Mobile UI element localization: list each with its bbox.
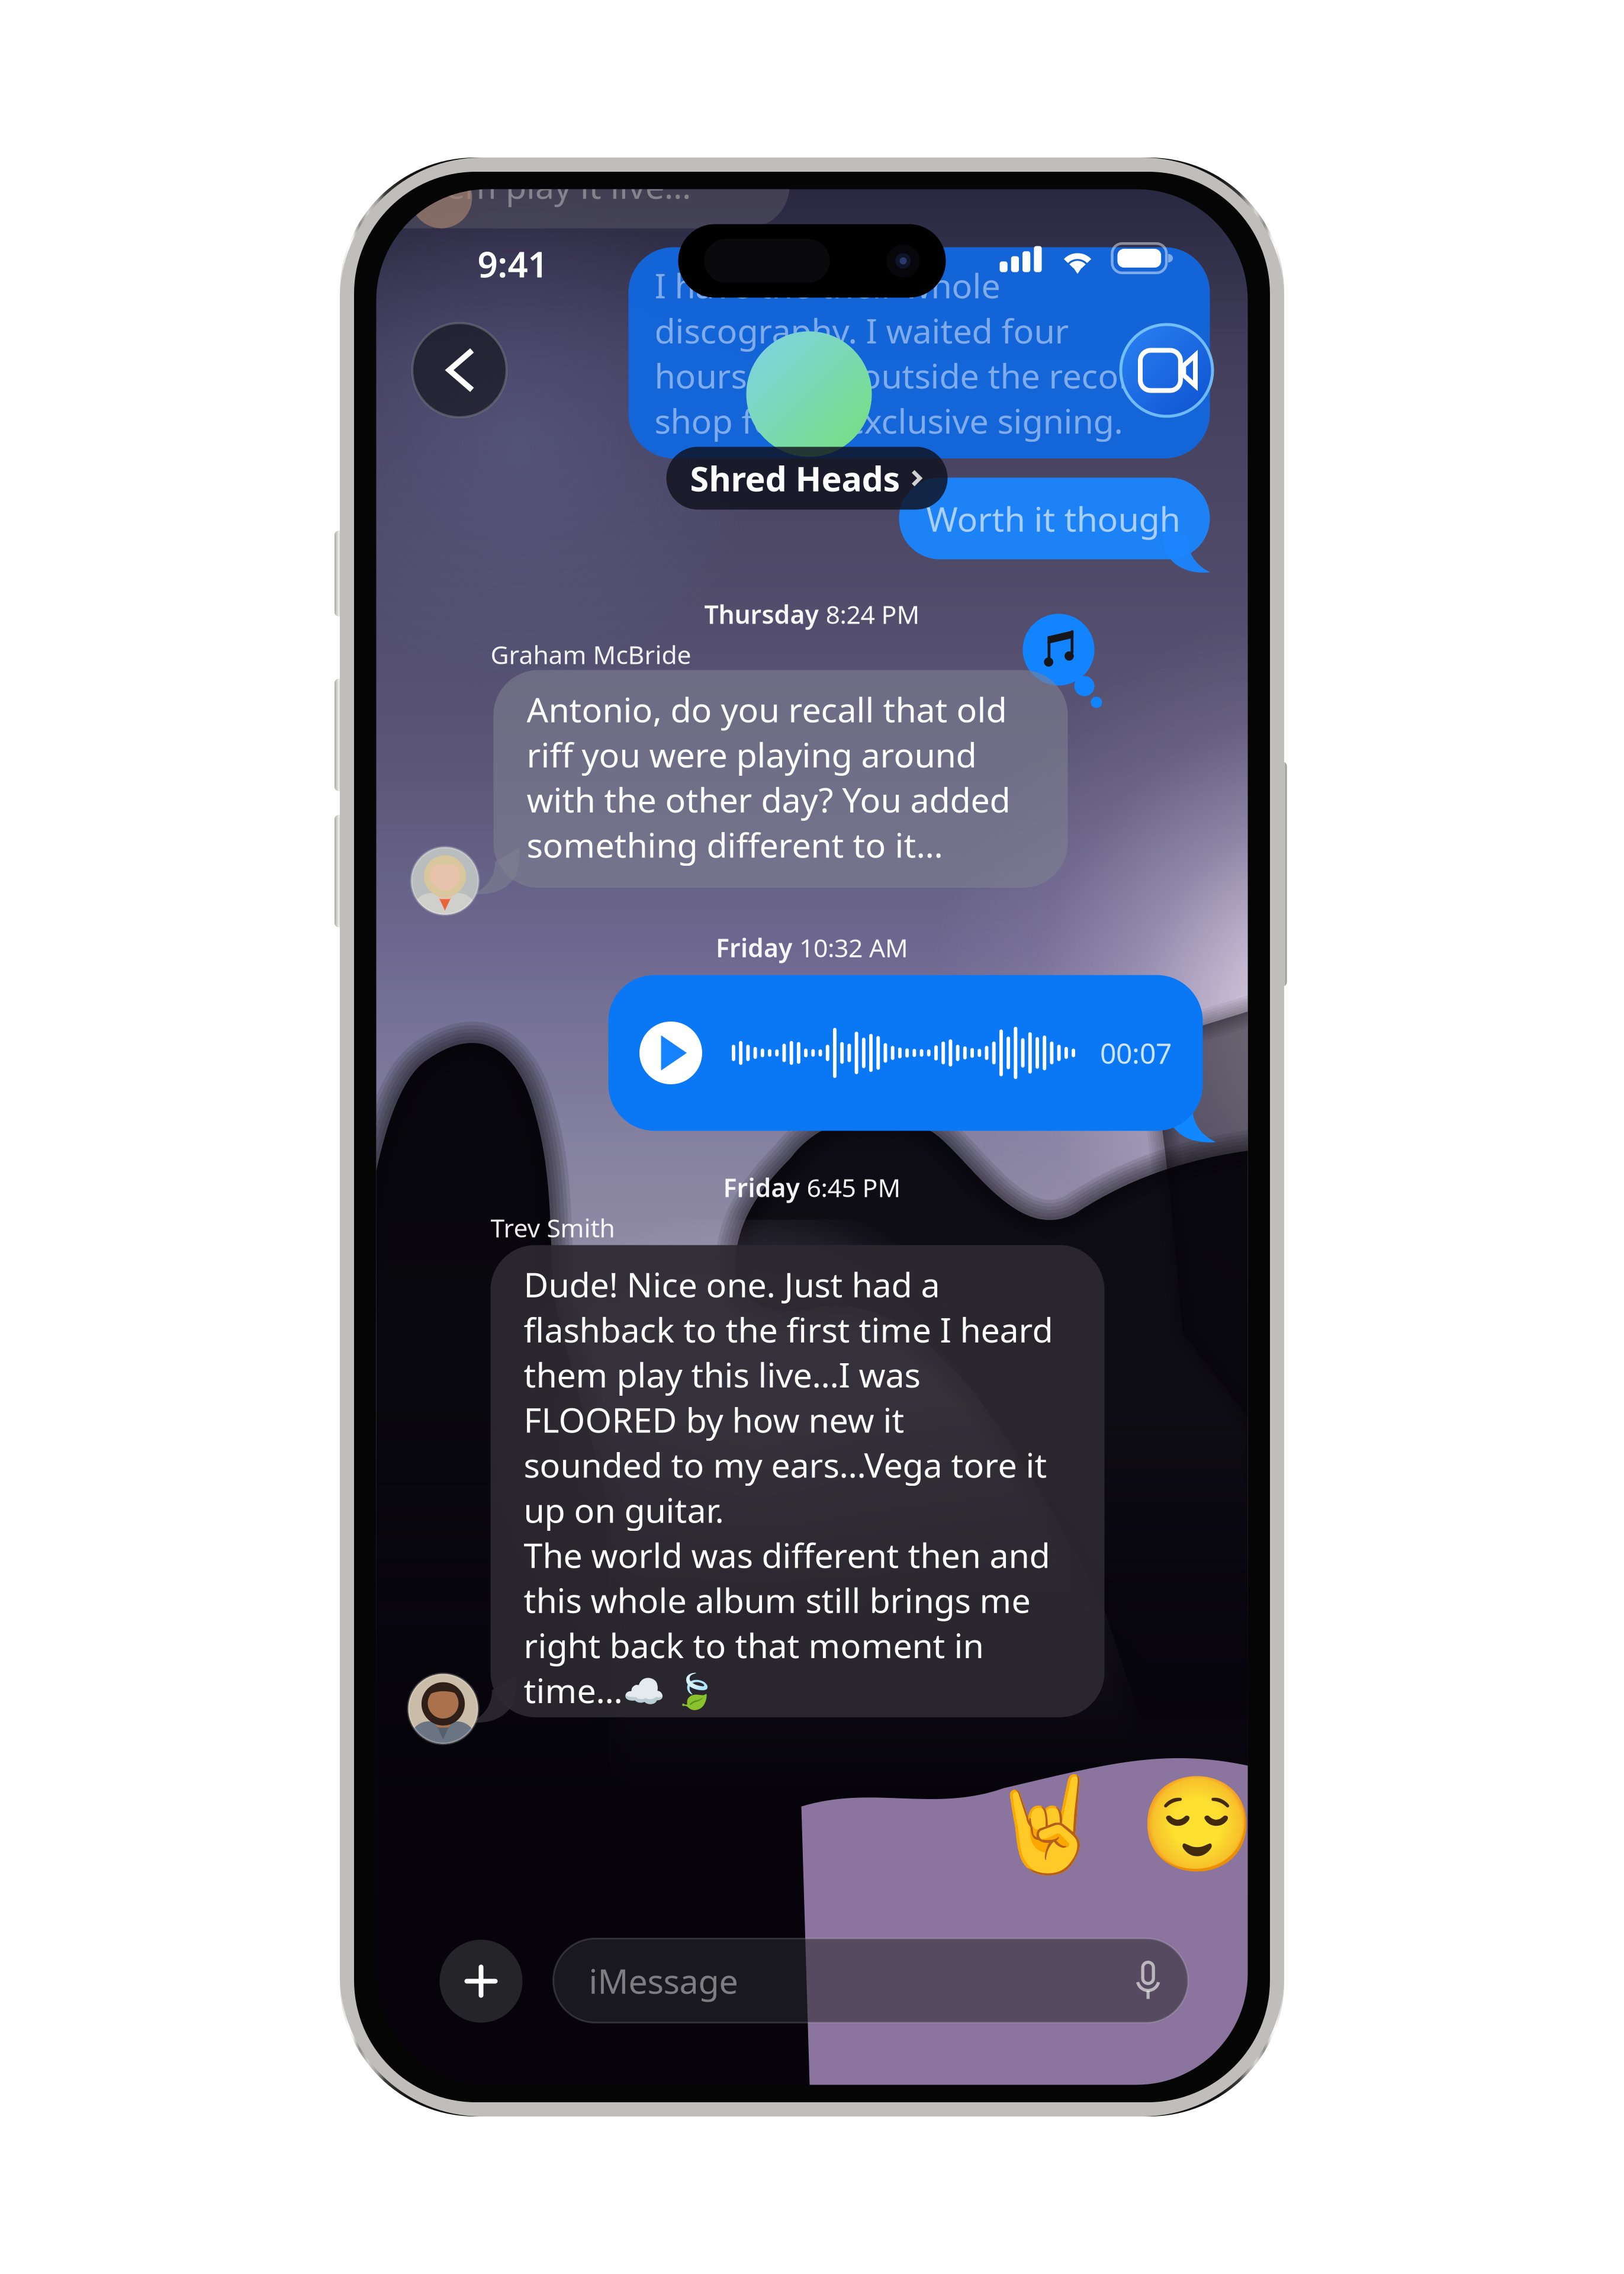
- staticText: Friday: [716, 931, 792, 964]
- staticText: Dude! Nice one. Just had a flashback to …: [524, 1262, 1053, 1713]
- staticText: 10:32 AM: [799, 931, 908, 964]
- staticText: Antonio, do you recall that old riff you…: [527, 687, 1010, 867]
- staticText: Graham McBride: [491, 637, 691, 671]
- staticText: I have the their whole discography. I wa…: [655, 263, 1153, 443]
- button[interactable]: iMessage: [553, 1939, 1188, 2023]
- staticText: Friday: [723, 1170, 800, 1204]
- staticText: 00:07: [1100, 1034, 1172, 1072]
- staticText: Shred Heads: [690, 456, 900, 501]
- button[interactable]: Shred Heads: [666, 447, 948, 510]
- staticText: 8:24 PM: [826, 597, 920, 631]
- button[interactable]: FaceTime: [1120, 324, 1213, 417]
- staticText: 🤘: [988, 1772, 1104, 1878]
- staticText: Worth it though: [926, 496, 1180, 541]
- staticText: 6:45 PM: [807, 1170, 901, 1204]
- staticText: Thursday: [704, 597, 819, 631]
- staticText: Trev Smith: [491, 1211, 615, 1244]
- staticText: 9:41: [477, 240, 548, 287]
- button[interactable]: Back: [412, 322, 507, 418]
- staticText: ...them play it live...: [386, 163, 691, 208]
- button[interactable]: Add attachment: [440, 1940, 522, 2023]
- staticText: 😌: [1139, 1772, 1255, 1878]
- staticText: iMessage: [589, 1958, 738, 2003]
